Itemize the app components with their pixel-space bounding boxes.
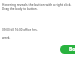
staticText: Drag the body to button. [2, 7, 38, 11]
staticText: Book now [69, 46, 75, 53]
staticText: week. [2, 36, 11, 40]
staticText: 09:00 till 16:00 office hrs. [2, 28, 38, 32]
staticText: Hovering reveals the button with a right… [2, 3, 72, 7]
button[interactable]: Book now [60, 45, 75, 54]
